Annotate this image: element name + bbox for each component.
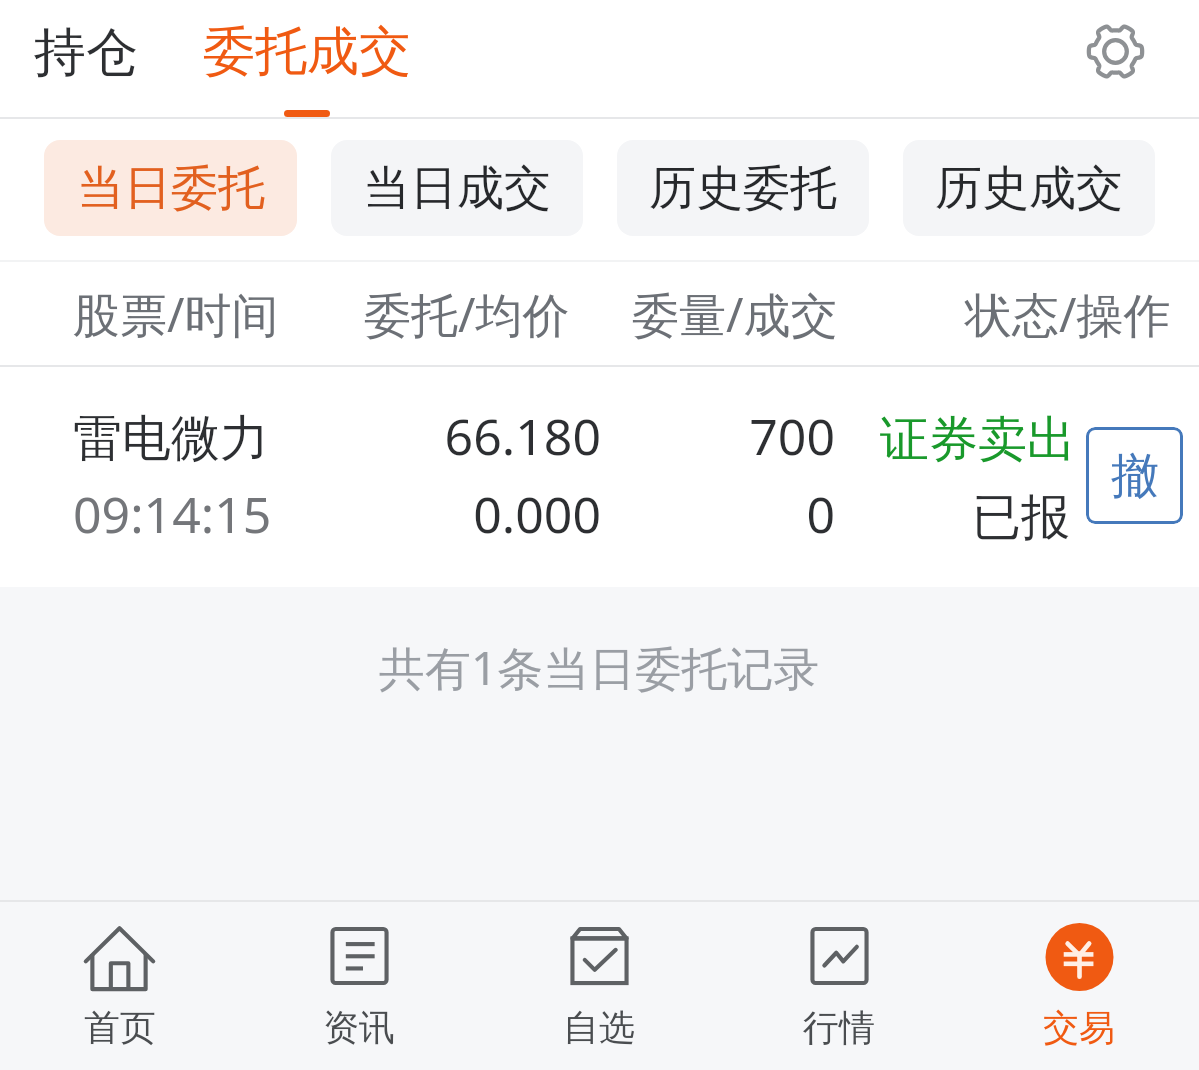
staticText: 股票/时间	[73, 282, 279, 346]
staticText: 当日委托	[77, 159, 265, 218]
button[interactable]: 当日委托	[44, 140, 297, 236]
staticText: 09:14:15	[73, 480, 272, 548]
staticText: 已报	[0, 487, 1070, 549]
staticText: 委托成交	[203, 19, 411, 85]
staticText: 雷电微力	[73, 408, 269, 470]
button[interactable]: 行情	[719, 902, 959, 1050]
staticText: 700	[0, 402, 835, 470]
button[interactable]: 历史委托	[617, 140, 869, 236]
button[interactable]: 持仓	[16, 0, 156, 106]
button[interactable]: 交易	[959, 902, 1199, 1050]
button[interactable]: 历史成交	[903, 140, 1155, 236]
staticText: 历史成交	[935, 159, 1123, 218]
button[interactable]: 委托成交	[183, 0, 431, 104]
staticText: 持仓	[34, 20, 138, 86]
button[interactable]: 资讯	[239, 902, 479, 1050]
button[interactable]: 雷电微力	[0, 367, 1199, 587]
staticText: 证券卖出	[0, 409, 1076, 471]
button[interactable]: Settings	[1071, 7, 1159, 95]
staticText: 当日成交	[363, 159, 551, 218]
button[interactable]: 撤	[1086, 427, 1183, 524]
staticText: 0	[0, 480, 835, 548]
button[interactable]: 当日成交	[331, 140, 583, 236]
staticText: 历史委托	[649, 159, 837, 218]
staticText: 交易	[1043, 1005, 1115, 1050]
staticText: 资讯	[323, 1005, 395, 1050]
staticText: 66.180	[0, 402, 601, 470]
staticText: 行情	[803, 1005, 875, 1050]
button[interactable]: 首页	[0, 902, 239, 1050]
staticText: 自选	[563, 1005, 635, 1050]
staticText: 委托/均价	[364, 282, 570, 346]
button[interactable]: 自选	[479, 902, 719, 1050]
staticText: 首页	[84, 1005, 156, 1050]
staticText: 状态/操作	[965, 282, 1171, 346]
staticText: 委量/成交	[632, 282, 838, 346]
staticText: 0.000	[0, 480, 601, 548]
staticText: 撤	[1111, 446, 1159, 506]
staticText: 共有1条当日委托记录	[379, 636, 820, 699]
